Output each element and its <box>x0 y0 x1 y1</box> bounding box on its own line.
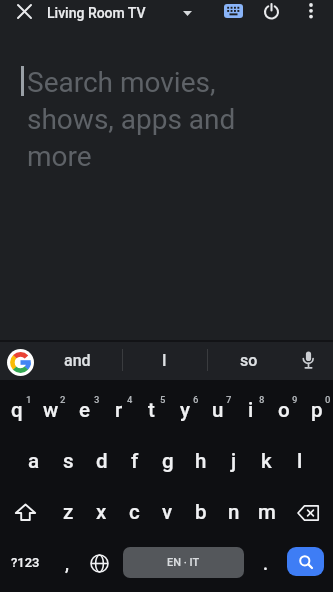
button[interactable]: k <box>250 436 283 487</box>
staticText: r <box>115 398 123 422</box>
button[interactable] <box>294 346 322 374</box>
staticText: q <box>11 398 23 422</box>
button[interactable]: , <box>50 538 83 589</box>
staticText: l <box>297 449 303 473</box>
button[interactable]: I <box>122 340 207 380</box>
button[interactable]: f <box>118 436 151 487</box>
staticText: 0 <box>325 394 331 405</box>
staticText: 1 <box>26 394 32 405</box>
staticText: j <box>231 449 237 473</box>
button[interactable]: v <box>151 487 184 538</box>
staticText: w <box>43 398 59 422</box>
staticText: Living Room TV <box>47 5 146 21</box>
staticText: k <box>261 449 272 473</box>
staticText: g <box>162 449 174 473</box>
button[interactable]: o <box>267 385 300 436</box>
staticText: and <box>64 351 91 370</box>
button[interactable]: d <box>85 436 118 487</box>
button[interactable]: y <box>168 385 201 436</box>
button[interactable] <box>260 0 282 22</box>
staticText: o <box>278 398 290 422</box>
button[interactable]: l <box>283 436 316 487</box>
staticText: 2 <box>60 394 66 405</box>
button[interactable] <box>0 487 51 538</box>
button[interactable] <box>300 0 321 21</box>
button[interactable]: t <box>135 385 168 436</box>
button[interactable]: s <box>51 436 85 487</box>
button[interactable] <box>176 2 198 24</box>
button[interactable] <box>83 538 116 589</box>
button[interactable]: ?123 <box>0 538 50 589</box>
staticText: a <box>28 449 40 473</box>
staticText: 9 <box>292 394 298 405</box>
button[interactable]: c <box>118 487 151 538</box>
button[interactable] <box>283 487 333 538</box>
button[interactable]: x <box>85 487 118 538</box>
button[interactable]: EN · IT <box>123 547 244 578</box>
staticText: b <box>195 500 207 524</box>
button[interactable]: z <box>51 487 85 538</box>
staticText: ?123 <box>11 555 40 570</box>
staticText: x <box>96 500 107 524</box>
staticText: 5 <box>160 394 166 405</box>
button[interactable]: q <box>0 385 34 436</box>
staticText: f <box>131 449 139 473</box>
button[interactable]: so <box>207 340 291 380</box>
button[interactable]: w <box>34 385 68 436</box>
button[interactable]: h <box>184 436 217 487</box>
staticText: 6 <box>193 394 199 405</box>
button[interactable]: m <box>250 487 283 538</box>
staticText: c <box>129 500 140 524</box>
staticText: s <box>63 449 74 473</box>
button[interactable]: . <box>249 538 282 589</box>
button[interactable] <box>14 1 34 21</box>
button[interactable]: g <box>151 436 184 487</box>
button[interactable]: n <box>217 487 250 538</box>
button[interactable]: u <box>201 385 234 436</box>
staticText: EN · IT <box>167 556 200 569</box>
staticText: 3 <box>94 394 100 405</box>
button[interactable]: b <box>184 487 217 538</box>
staticText: I <box>162 351 167 370</box>
staticText: v <box>162 500 173 524</box>
staticText: t <box>148 398 155 422</box>
staticText: 8 <box>259 394 265 405</box>
button[interactable] <box>287 547 324 576</box>
staticText: p <box>311 398 323 422</box>
staticText: y <box>180 398 190 422</box>
button[interactable] <box>222 0 244 22</box>
staticText: 4 <box>127 394 133 405</box>
staticText: n <box>228 500 240 524</box>
button[interactable] <box>6 348 34 376</box>
button[interactable]: j <box>217 436 250 487</box>
staticText: i <box>248 398 254 422</box>
staticText: e <box>79 398 91 422</box>
staticText: . <box>263 553 269 574</box>
staticText: , <box>65 553 69 574</box>
staticText: 7 <box>226 394 232 405</box>
staticText: m <box>258 500 276 524</box>
staticText: so <box>240 351 258 370</box>
button[interactable]: i <box>234 385 267 436</box>
button[interactable]: r <box>102 385 135 436</box>
staticText: z <box>63 500 74 524</box>
button[interactable]: p <box>300 385 333 436</box>
staticText: u <box>212 398 224 422</box>
button[interactable]: e <box>68 385 102 436</box>
staticText: Search movies, shows, apps and more <box>27 66 236 173</box>
button[interactable]: and <box>40 340 114 380</box>
button[interactable]: a <box>17 436 51 487</box>
staticText: d <box>96 449 108 473</box>
staticText: h <box>195 449 207 473</box>
